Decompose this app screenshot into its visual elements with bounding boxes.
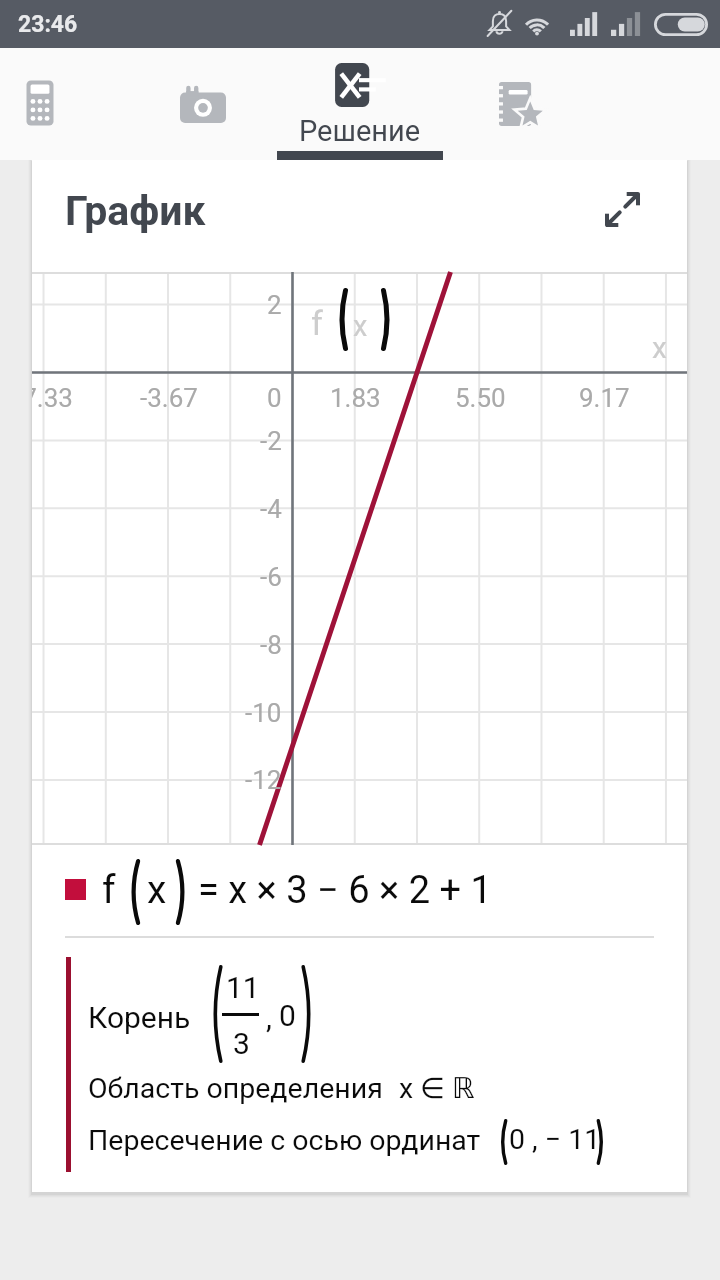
staticText: = x × 3 − 6 × 2 + 1 [198, 868, 492, 913]
staticText: 0 , − 11 [509, 1123, 601, 1156]
staticText: -12 [245, 765, 282, 795]
staticText: f [311, 303, 323, 343]
staticText: Область определения [88, 1072, 383, 1105]
staticText: 5.50 [455, 383, 506, 413]
other: Favorites [499, 82, 543, 126]
staticText: x [353, 309, 368, 343]
staticText: График [65, 187, 206, 235]
staticText: 2 [267, 290, 282, 320]
staticText: -6 [260, 562, 282, 592]
staticText: x [652, 330, 667, 365]
staticText: f [102, 867, 116, 913]
staticText: -10 [245, 698, 282, 728]
button[interactable]: Решение [280, 48, 440, 160]
button[interactable]: Camera [123, 48, 283, 160]
staticText: 23:46 [18, 11, 78, 38]
button[interactable]: Calculator [0, 48, 120, 160]
staticText: Корень [88, 1000, 191, 1035]
staticText: Решение [299, 114, 421, 148]
staticText: -8 [260, 630, 282, 660]
button[interactable]: Expand graph [593, 180, 651, 238]
staticText: -3.67 [140, 383, 198, 413]
staticText: 0 [267, 383, 282, 413]
staticText: 11 [226, 970, 260, 1005]
other: Calculator [25, 80, 55, 126]
staticText: -7.33 [32, 383, 73, 413]
staticText: Пересечение с осью ординат [88, 1124, 481, 1157]
staticText: 1.83 [330, 383, 381, 413]
staticText: , [266, 1000, 272, 1035]
staticText: -2 [260, 426, 282, 456]
button[interactable]: Favorites [440, 48, 600, 160]
staticText: 3 [233, 1026, 250, 1061]
staticText: -4 [260, 494, 282, 524]
staticText: 0 [279, 998, 296, 1033]
other: Camera [180, 85, 226, 123]
staticText: x [147, 867, 167, 913]
staticText: x ∈ ℝ [399, 1072, 475, 1105]
staticText: 9.17 [579, 383, 630, 413]
